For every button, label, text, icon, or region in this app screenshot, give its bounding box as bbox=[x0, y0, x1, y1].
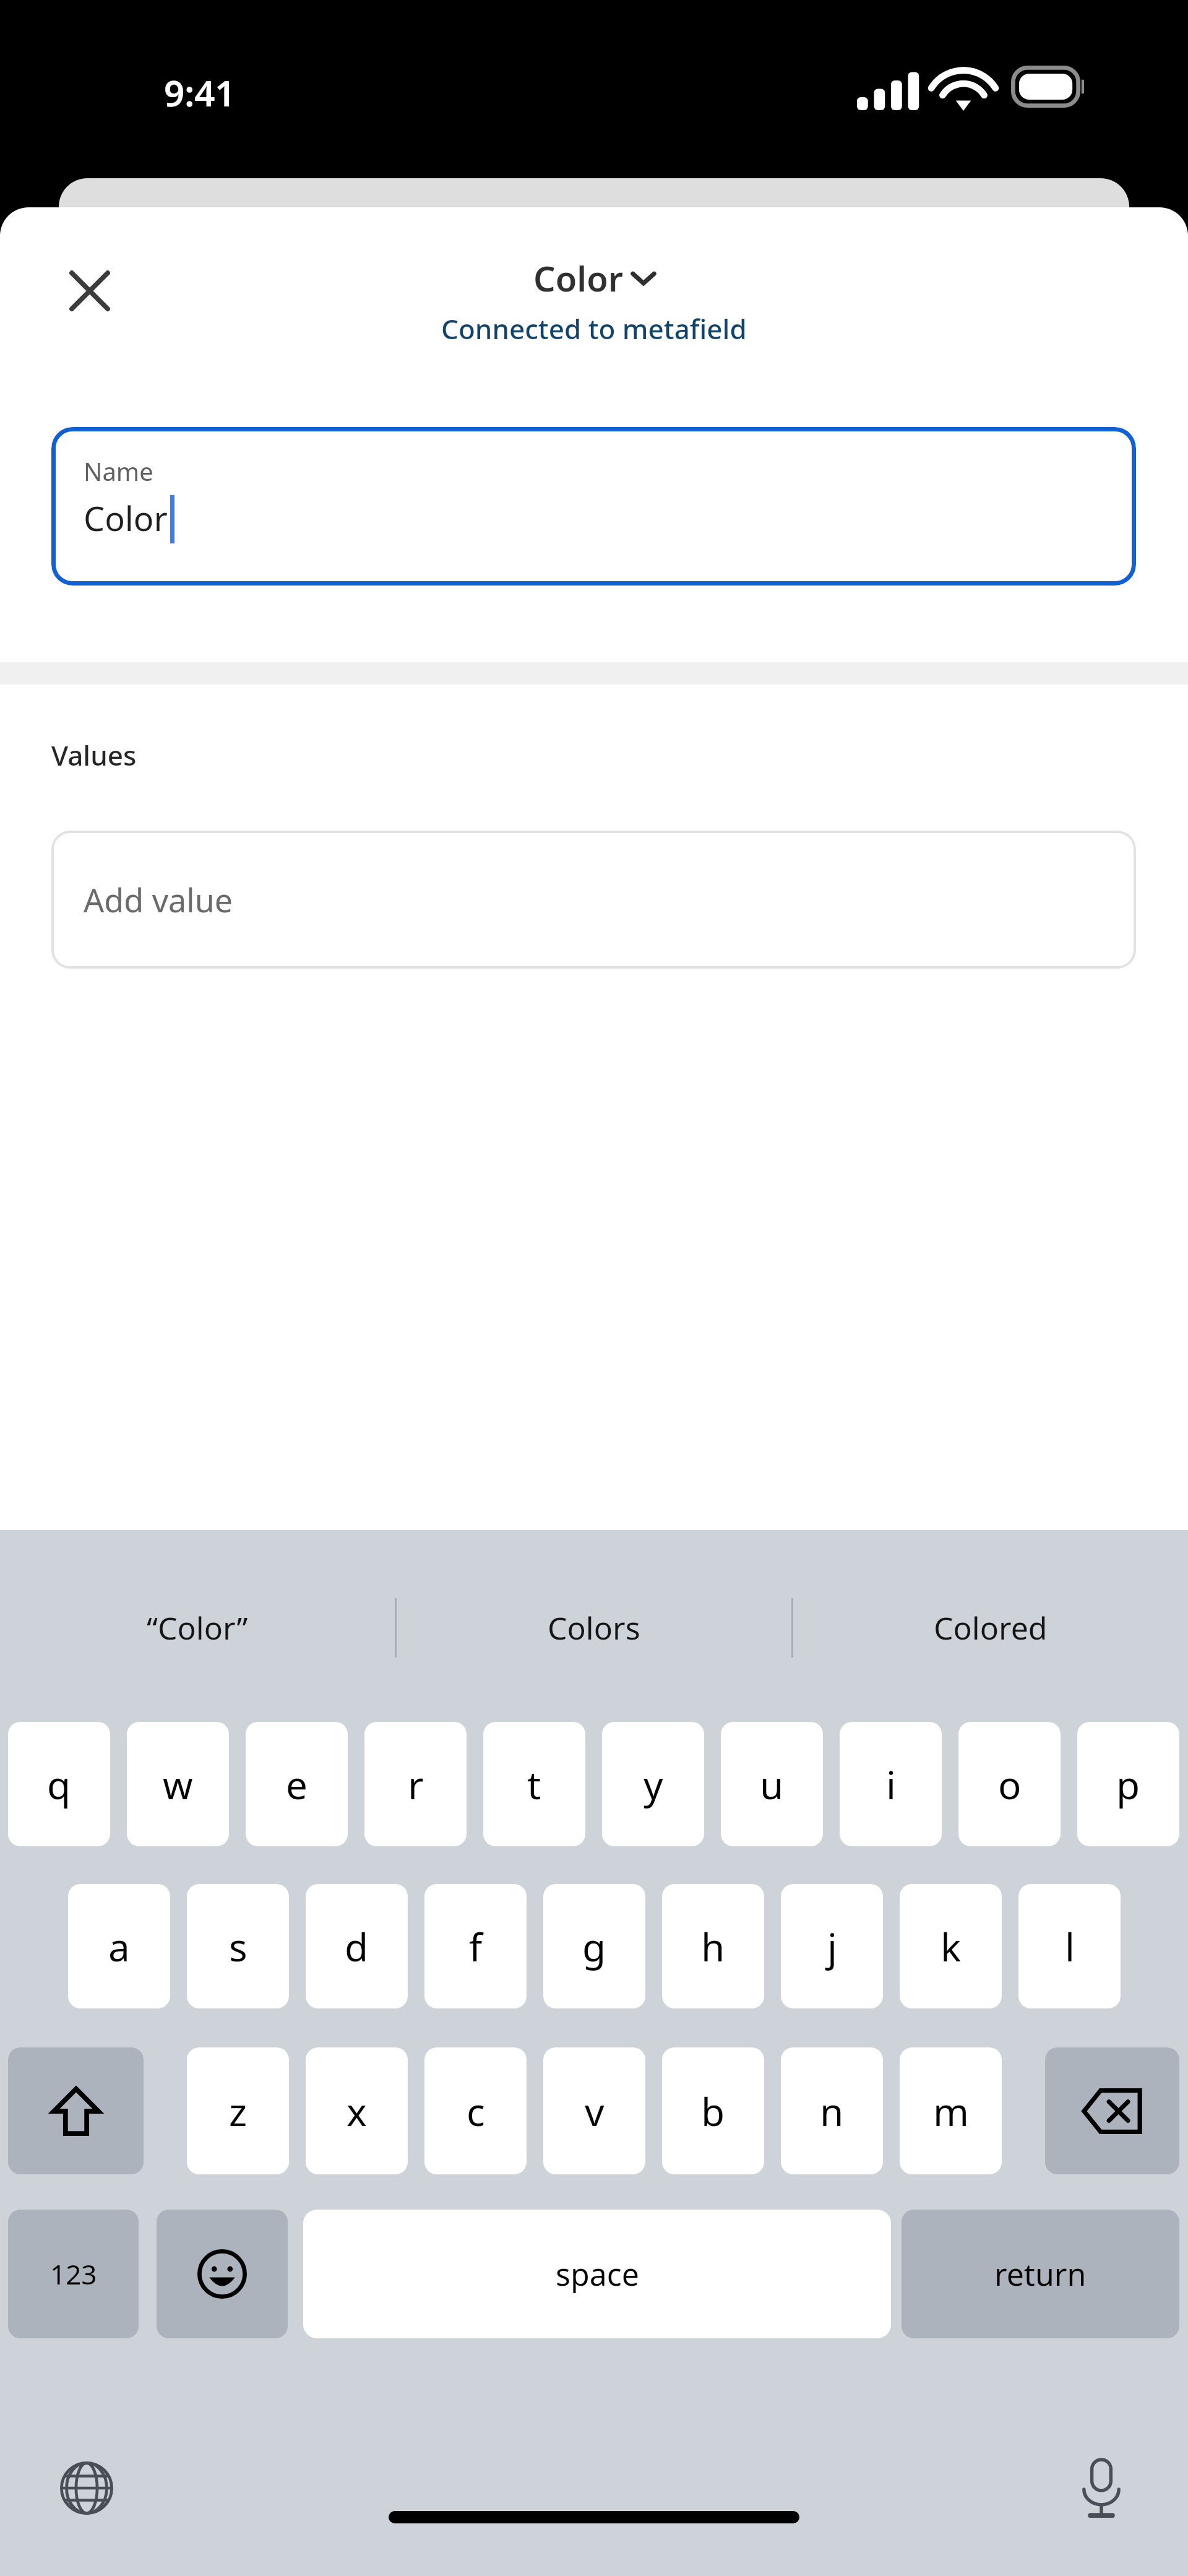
button[interactable]: x bbox=[306, 2047, 408, 2174]
staticText: y bbox=[643, 1758, 663, 1810]
button[interactable]: return bbox=[902, 2210, 1179, 2338]
staticText: t bbox=[527, 1758, 541, 1810]
staticText: o bbox=[998, 1758, 1022, 1810]
staticText: 9:41 bbox=[164, 68, 236, 117]
button[interactable]: o bbox=[958, 1722, 1061, 1846]
staticText: z bbox=[229, 2085, 247, 2137]
staticText: a bbox=[108, 1921, 130, 1973]
staticText: q bbox=[47, 1758, 71, 1810]
button[interactable]: Close bbox=[53, 254, 127, 328]
staticText: b bbox=[701, 2085, 725, 2137]
button[interactable]: k bbox=[900, 1884, 1002, 2008]
staticText: p bbox=[1116, 1758, 1140, 1810]
staticText: g bbox=[582, 1921, 606, 1973]
staticText: Values bbox=[51, 737, 137, 774]
staticText: Name bbox=[84, 454, 153, 488]
button[interactable]: Name bbox=[51, 427, 1136, 586]
button[interactable]: space bbox=[303, 2210, 891, 2338]
button[interactable]: Colors bbox=[397, 1584, 791, 1671]
button[interactable]: q bbox=[8, 1722, 110, 1846]
button[interactable]: d bbox=[306, 1884, 408, 2008]
button[interactable]: h bbox=[662, 1884, 764, 2008]
button[interactable]: j bbox=[781, 1884, 883, 2008]
staticText: m bbox=[933, 2085, 969, 2137]
staticText: Connected to metafield bbox=[441, 310, 747, 347]
button[interactable]: v bbox=[543, 2047, 645, 2174]
button[interactable]: u bbox=[721, 1722, 823, 1846]
staticText: c bbox=[467, 2085, 485, 2137]
button[interactable]: Shift bbox=[8, 2047, 144, 2174]
staticText: space bbox=[556, 2253, 639, 2295]
button[interactable]: Connected to metafield bbox=[0, 306, 1188, 351]
staticText: u bbox=[760, 1758, 784, 1810]
staticText: Color bbox=[533, 254, 623, 301]
staticText: e bbox=[286, 1758, 308, 1810]
staticText: Add value bbox=[84, 878, 233, 922]
button[interactable]: m bbox=[900, 2047, 1002, 2174]
staticText: j bbox=[827, 1921, 837, 1973]
staticText: h bbox=[701, 1921, 725, 1973]
staticText: s bbox=[229, 1921, 247, 1973]
staticText: “Color” bbox=[147, 1607, 248, 1649]
button[interactable]: n bbox=[781, 2047, 883, 2174]
button[interactable]: Add value bbox=[51, 831, 1136, 969]
button[interactable]: Color bbox=[0, 249, 1188, 306]
staticText: return bbox=[994, 2253, 1087, 2295]
staticText: k bbox=[940, 1921, 962, 1973]
staticText: 123 bbox=[50, 2255, 97, 2293]
staticText: f bbox=[469, 1921, 483, 1973]
staticText: Color bbox=[84, 495, 168, 541]
button[interactable]: w bbox=[127, 1722, 229, 1846]
button[interactable]: “Color” bbox=[0, 1584, 395, 1671]
button[interactable]: Change keyboard bbox=[37, 2439, 136, 2538]
staticText: v bbox=[585, 2085, 605, 2137]
staticText: x bbox=[346, 2085, 367, 2137]
button[interactable]: b bbox=[662, 2047, 764, 2174]
button[interactable]: e bbox=[246, 1722, 348, 1846]
button[interactable]: Emoji bbox=[157, 2210, 288, 2338]
button[interactable]: z bbox=[187, 2047, 289, 2174]
staticText: r bbox=[408, 1758, 424, 1810]
button[interactable]: c bbox=[424, 2047, 527, 2174]
button[interactable]: y bbox=[602, 1722, 704, 1846]
staticText: n bbox=[820, 2085, 844, 2137]
button[interactable]: p bbox=[1077, 1722, 1179, 1846]
button[interactable]: i bbox=[840, 1722, 942, 1846]
staticText: Colored bbox=[934, 1607, 1048, 1649]
button[interactable]: t bbox=[483, 1722, 585, 1846]
staticText: w bbox=[163, 1758, 193, 1810]
button[interactable]: Backspace bbox=[1045, 2047, 1179, 2174]
staticText: Colors bbox=[548, 1607, 640, 1649]
button[interactable]: f bbox=[424, 1884, 527, 2008]
button[interactable]: g bbox=[543, 1884, 645, 2008]
button[interactable]: 123 bbox=[8, 2210, 139, 2338]
staticText: l bbox=[1065, 1921, 1075, 1973]
button[interactable]: r bbox=[364, 1722, 467, 1846]
button[interactable]: s bbox=[187, 1884, 289, 2008]
button[interactable]: l bbox=[1018, 1884, 1121, 2008]
button[interactable]: Colored bbox=[793, 1584, 1188, 1671]
button[interactable]: Dictate bbox=[1052, 2439, 1151, 2538]
staticText: i bbox=[886, 1758, 896, 1810]
button[interactable]: a bbox=[68, 1884, 170, 2008]
staticText: d bbox=[345, 1921, 369, 1973]
